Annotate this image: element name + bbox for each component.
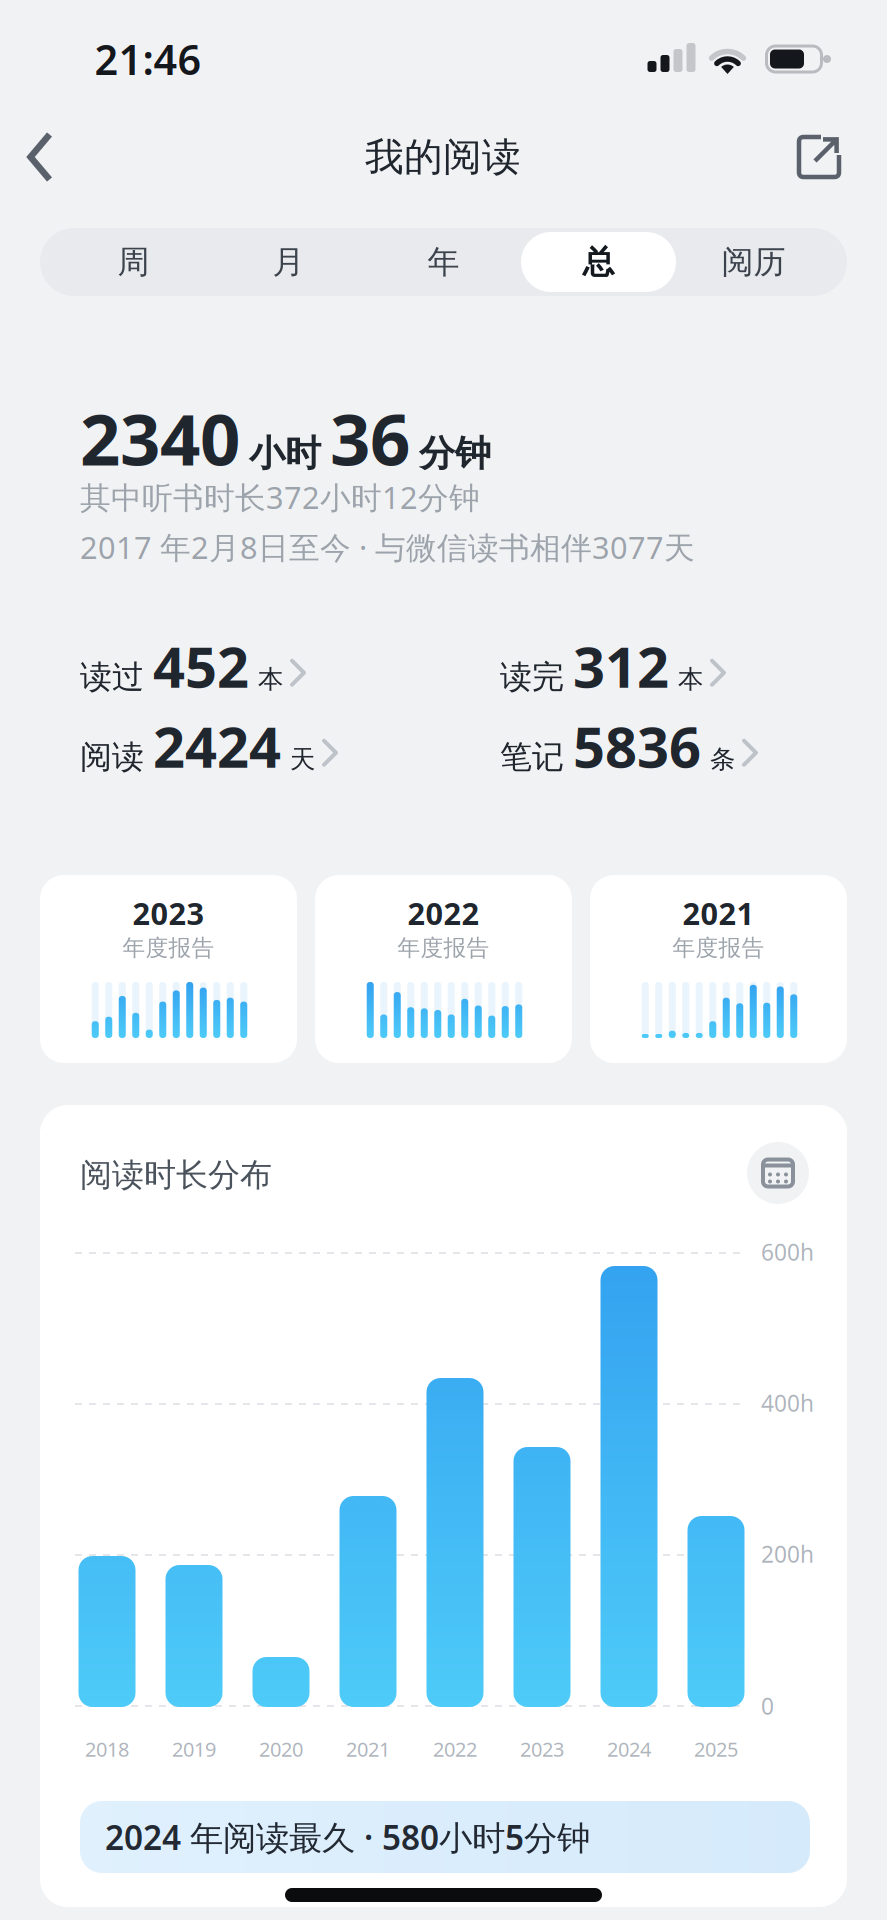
staticText: 读完 (500, 657, 564, 697)
staticText: 年度报告 (397, 934, 489, 962)
staticText: 年度报告 (672, 934, 764, 962)
staticText: 2023 (132, 893, 204, 933)
button[interactable]: 阅历 (678, 231, 828, 293)
button[interactable]: 年 (368, 231, 518, 293)
staticText: 2024 (607, 1736, 651, 1762)
staticText: 2017 年2月8日至今 · 与微信读书相伴3077天 (80, 527, 695, 567)
staticText: 21:46 (94, 32, 201, 86)
button[interactable]: Back (18, 122, 61, 191)
staticText: 本 (258, 664, 283, 695)
button[interactable]: 总 (523, 231, 673, 293)
staticText: 0 (761, 1691, 774, 1721)
staticText: 2023 (520, 1736, 564, 1762)
button[interactable]: Calendar (747, 1142, 809, 1204)
staticText: 2021 (682, 893, 754, 933)
staticText: 2340 (80, 391, 240, 485)
staticText: 小时 (249, 431, 321, 475)
staticText: 36 (330, 391, 410, 485)
staticText: 阅读时长分布 (80, 1155, 272, 1195)
button[interactable]: 2021 (590, 875, 847, 1063)
button[interactable]: 读完 (500, 629, 887, 703)
staticText: 我的阅读 (365, 133, 521, 181)
staticText: 条 (710, 744, 735, 775)
staticText: 笔记 (500, 737, 564, 777)
staticText: 2018 (85, 1736, 129, 1762)
staticText: 2025 (694, 1736, 738, 1762)
staticText: 周 (117, 242, 149, 282)
staticText: 本 (678, 664, 703, 695)
button[interactable]: 月 (213, 231, 363, 293)
staticText: 312 (573, 629, 669, 703)
button[interactable]: 阅读 (80, 709, 470, 783)
staticText: 452 (153, 629, 249, 703)
button[interactable]: 2023 (40, 875, 297, 1063)
staticText: 600h (761, 1237, 814, 1267)
staticText: 阅历 (721, 242, 785, 282)
staticText: 阅读 (80, 737, 144, 777)
staticText: 分钟 (419, 431, 491, 475)
button[interactable]: 2022 (315, 875, 572, 1063)
staticText: 2024 年阅读最久 · 580小时5分钟 (105, 1815, 590, 1859)
button[interactable]: 周 (58, 231, 208, 293)
staticText: 其中听书时长372小时12分钟 (80, 477, 480, 517)
staticText: 5836 (573, 709, 701, 783)
staticText: 年 (427, 242, 459, 282)
staticText: 总 (582, 242, 614, 282)
staticText: 读过 (80, 657, 144, 697)
button[interactable]: Share (789, 127, 849, 187)
staticText: 400h (761, 1388, 814, 1418)
staticText: 月 (272, 242, 304, 282)
staticText: 2424 (153, 709, 281, 783)
staticText: 年度报告 (122, 934, 214, 962)
staticText: 200h (761, 1539, 814, 1569)
staticText: 2021 (346, 1736, 390, 1762)
staticText: 2020 (259, 1736, 303, 1762)
staticText: 2022 (407, 893, 479, 933)
staticText: 天 (290, 744, 315, 775)
staticText: 2022 (433, 1736, 477, 1762)
staticText: 2019 (172, 1736, 216, 1762)
button[interactable]: 笔记 (500, 709, 887, 783)
button[interactable]: 读过 (80, 629, 470, 703)
